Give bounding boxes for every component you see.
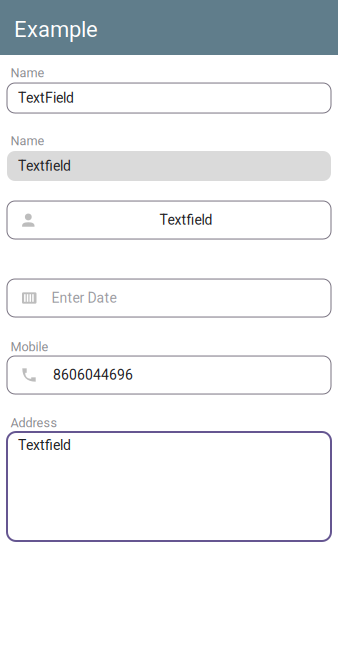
button[interactable]: Textfield bbox=[7, 432, 331, 541]
staticText: Enter Date bbox=[51, 290, 116, 306]
staticText: Textfield bbox=[18, 158, 71, 174]
button[interactable]: Enter Date bbox=[7, 279, 331, 317]
staticText: Textfield bbox=[160, 212, 213, 228]
staticText: 8606044696 bbox=[53, 367, 133, 383]
button[interactable]: 8606044696 bbox=[7, 356, 331, 394]
button[interactable]: TextField bbox=[7, 83, 331, 113]
staticText: Textfield bbox=[18, 437, 71, 453]
button[interactable]: Textfield bbox=[7, 201, 331, 239]
staticText: Example bbox=[14, 17, 98, 42]
staticText: Name bbox=[10, 134, 44, 148]
staticText: Mobile bbox=[10, 340, 48, 354]
button[interactable]: Textfield bbox=[7, 151, 331, 181]
staticText: TextField bbox=[18, 90, 74, 106]
staticText: Address bbox=[10, 416, 57, 430]
staticText: Name bbox=[10, 66, 44, 80]
